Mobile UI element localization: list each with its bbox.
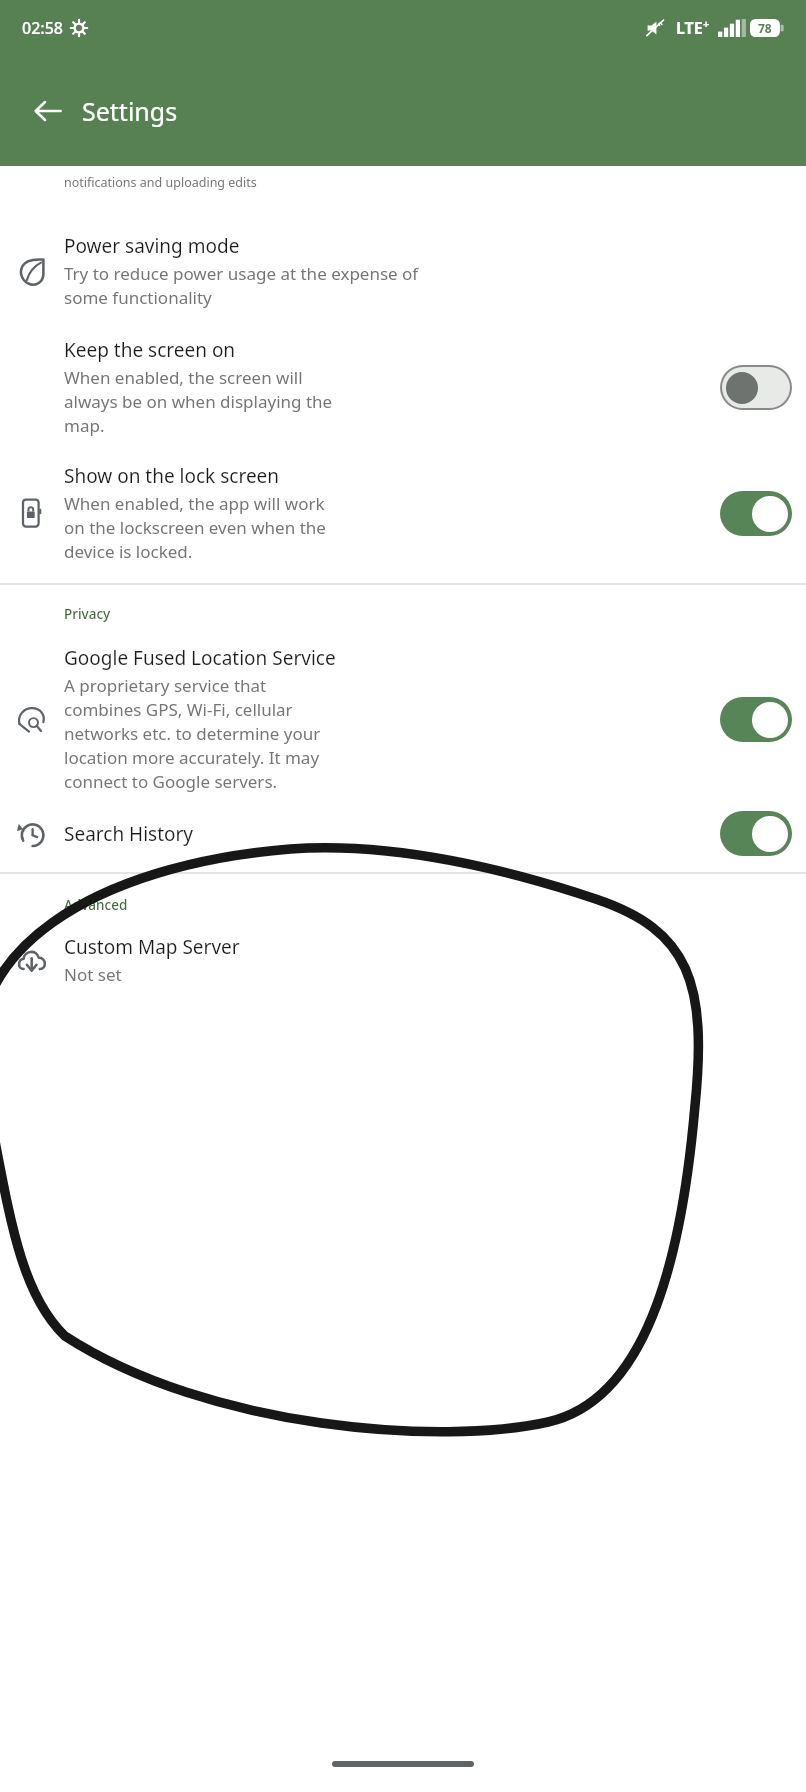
button[interactable]: Keep the screen on (0, 337, 806, 437)
button[interactable]: Google Fused Location Service (0, 645, 806, 793)
staticText: Power saving mode (64, 233, 240, 259)
staticText: Try to reduce power usage at the expense… (64, 262, 419, 309)
staticText: 02:58 (22, 17, 63, 39)
staticText: A proprietary service that combines GPS,… (64, 674, 321, 793)
button[interactable]: Search History (0, 811, 806, 856)
staticText: Search History (64, 821, 194, 847)
staticText: notifications and uploading edits (64, 174, 257, 191)
staticText: Not set (64, 963, 122, 986)
staticText: Advanced (64, 896, 128, 914)
staticText: Keep the screen on (64, 337, 236, 363)
staticText: Privacy (64, 605, 111, 623)
staticText: LTE (676, 17, 703, 39)
staticText: Google Fused Location Service (64, 645, 336, 671)
button[interactable]: Back (20, 83, 76, 139)
staticText: Custom Map Server (64, 934, 240, 960)
staticText: 78 (758, 20, 772, 36)
button[interactable]: Toggle on (720, 811, 792, 856)
staticText: + (703, 16, 710, 31)
button[interactable]: Toggle on (720, 697, 792, 742)
button[interactable]: Show on the lock screen (0, 463, 806, 563)
button[interactable]: Custom Map Server (0, 934, 806, 986)
button[interactable]: Toggle off (722, 367, 790, 408)
button[interactable]: Power saving mode (0, 233, 806, 309)
button[interactable]: Toggle on (720, 491, 792, 536)
staticText: When enabled, the app will work on the l… (64, 492, 326, 563)
staticText: Show on the lock screen (64, 463, 280, 489)
staticText: Settings (82, 94, 178, 128)
staticText: When enabled, the screen will always be … (64, 366, 333, 437)
